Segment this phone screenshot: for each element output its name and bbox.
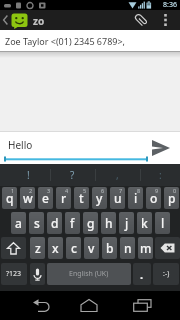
staticText: , xyxy=(116,168,119,182)
button[interactable]: u xyxy=(110,187,125,209)
button[interactable]: l xyxy=(155,212,170,234)
button[interactable] xyxy=(129,291,155,320)
staticText: r xyxy=(61,190,67,206)
button[interactable]: : xyxy=(140,164,180,186)
staticText: g xyxy=(87,215,95,231)
button[interactable] xyxy=(150,137,172,159)
button[interactable]: n xyxy=(120,237,135,259)
staticText: . xyxy=(140,267,144,282)
staticText: w xyxy=(23,190,33,206)
staticText: 8 xyxy=(137,187,141,194)
button[interactable]: ? xyxy=(50,164,95,186)
staticText: h xyxy=(105,215,113,231)
staticText: 3 xyxy=(47,187,51,194)
button[interactable]: d xyxy=(47,212,62,234)
button[interactable] xyxy=(1,237,26,259)
button[interactable]: ?123 xyxy=(1,263,27,285)
button[interactable]: p xyxy=(164,187,179,209)
staticText: Zoe Taylor <(01) 2345 6789>, xyxy=(5,35,126,47)
button[interactable]: w xyxy=(20,187,35,209)
button[interactable]: e xyxy=(38,187,53,209)
button[interactable]: m xyxy=(138,237,153,259)
button[interactable]: k xyxy=(137,212,152,234)
staticText: 6 xyxy=(101,187,105,194)
staticText: 9 xyxy=(155,187,159,194)
button[interactable]: f xyxy=(65,212,80,234)
staticText: u xyxy=(114,190,122,206)
button[interactable]: x xyxy=(48,237,63,259)
button[interactable]: o xyxy=(146,187,161,209)
staticText: d xyxy=(51,215,59,231)
staticText: y xyxy=(96,190,103,206)
staticText: 7 xyxy=(119,187,123,194)
button[interactable]: Zoe Taylor <(01) 2345 6789>, xyxy=(0,30,180,51)
staticText: 8:36 xyxy=(163,0,177,10)
button[interactable] xyxy=(155,237,180,259)
staticText: v xyxy=(88,240,95,256)
button[interactable] xyxy=(11,13,28,29)
staticText: t xyxy=(79,190,84,206)
button[interactable] xyxy=(131,10,151,30)
staticText: 4 xyxy=(65,187,69,194)
button[interactable]: h xyxy=(101,212,116,234)
staticText: b xyxy=(106,240,114,256)
staticText: c xyxy=(71,240,77,256)
staticText: x xyxy=(52,240,59,256)
staticText: p xyxy=(168,190,176,206)
button[interactable]: a xyxy=(11,212,26,234)
staticText: l xyxy=(161,215,165,231)
staticText: f xyxy=(70,215,75,231)
staticText: English (UK) xyxy=(69,269,109,279)
button[interactable]: t xyxy=(74,187,89,209)
staticText: ? xyxy=(70,168,75,182)
button[interactable]: r xyxy=(56,187,71,209)
button[interactable]: j xyxy=(119,212,134,234)
staticText: 2 xyxy=(29,187,33,194)
staticText: j xyxy=(125,215,129,231)
staticText: a xyxy=(15,215,22,231)
staticText: 0 xyxy=(173,187,177,194)
staticText: s xyxy=(34,215,40,231)
button[interactable]: b xyxy=(102,237,117,259)
button[interactable]: English (UK) xyxy=(47,263,131,285)
button[interactable] xyxy=(28,291,54,320)
staticText: : xyxy=(159,168,162,182)
button[interactable]: y xyxy=(92,187,107,209)
button[interactable]: ! xyxy=(6,164,50,186)
button[interactable]: . xyxy=(133,263,151,285)
button[interactable] xyxy=(76,291,102,320)
staticText: n xyxy=(124,240,132,256)
staticText: z xyxy=(35,240,41,256)
staticText: 1 xyxy=(11,187,15,194)
button[interactable]: v xyxy=(84,237,99,259)
staticText: zo xyxy=(33,14,45,28)
staticText: i xyxy=(134,190,138,206)
staticText: k xyxy=(141,215,148,231)
button[interactable]: i xyxy=(128,187,143,209)
staticText: :-) xyxy=(163,269,170,279)
button[interactable]: c xyxy=(66,237,81,259)
staticText: ! xyxy=(27,168,30,182)
button[interactable] xyxy=(30,263,45,285)
button[interactable]: q xyxy=(2,187,17,209)
button[interactable] xyxy=(161,12,169,28)
button[interactable]: :-) xyxy=(153,263,179,285)
button[interactable]: z xyxy=(30,237,45,259)
button[interactable]: g xyxy=(83,212,98,234)
staticText: ?123 xyxy=(6,269,22,279)
button[interactable]: s xyxy=(29,212,44,234)
staticText: m xyxy=(140,240,152,256)
staticText: q xyxy=(6,190,14,206)
staticText: e xyxy=(42,190,49,206)
staticText: Hello xyxy=(8,138,33,152)
staticText: o xyxy=(150,190,158,206)
staticText: 5 xyxy=(83,187,87,194)
